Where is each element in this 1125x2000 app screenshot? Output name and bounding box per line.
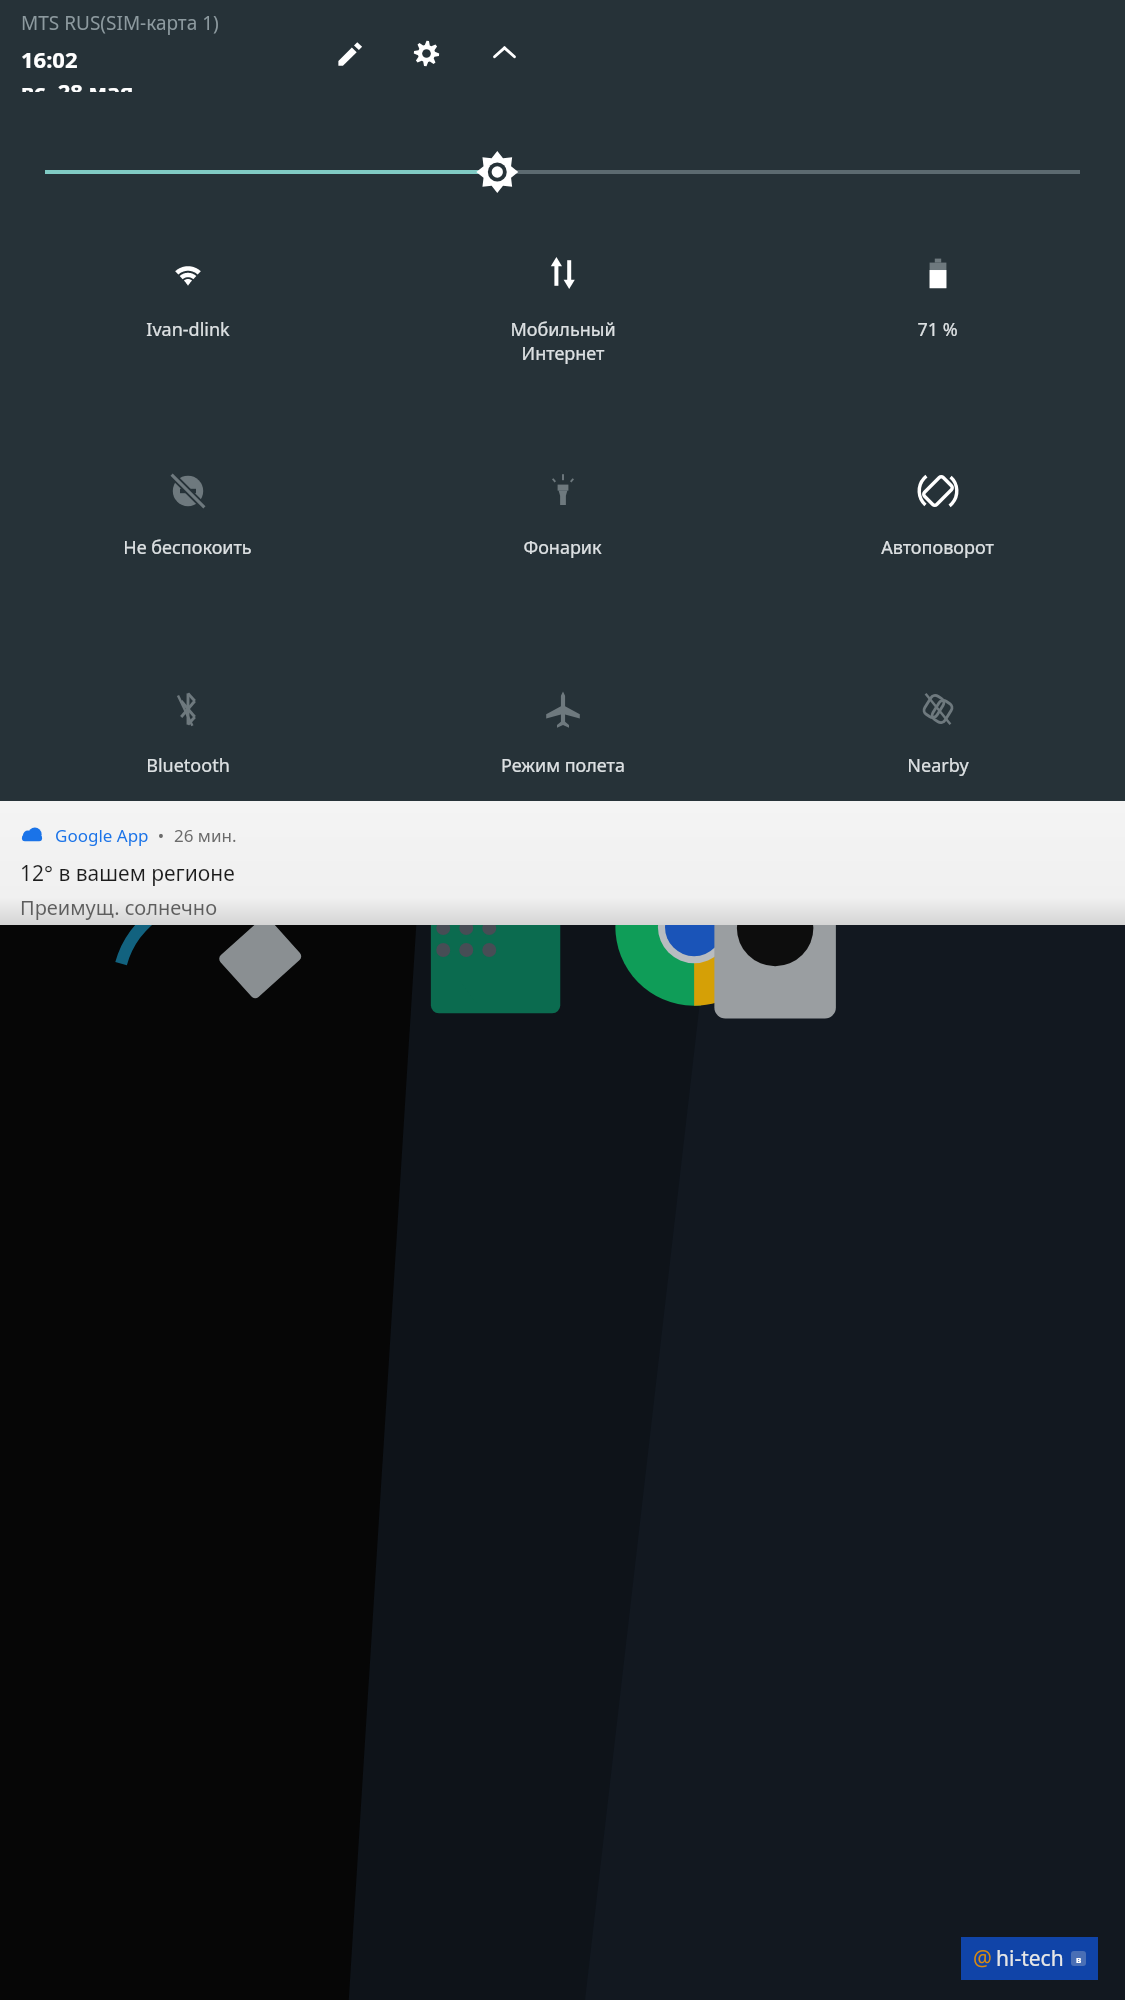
staticText: Nearby [907, 753, 969, 778]
button[interactable]: Ivan-dlink [0, 243, 375, 419]
button[interactable]: Collapse [484, 33, 524, 73]
button[interactable]: 71 % [750, 243, 1125, 419]
button[interactable]: Мобильный Интернет [375, 243, 750, 419]
staticText: MTS RUS(SIM-карта 1) [21, 10, 219, 36]
button[interactable]: Автоповорот [750, 461, 1125, 637]
staticText: 71 % [917, 317, 958, 342]
staticText: в [1076, 1953, 1082, 1965]
button[interactable]: Settings [406, 33, 446, 73]
staticText: вс, 28 мая [21, 76, 134, 92]
staticText: Мобильный Интернет [510, 317, 616, 365]
staticText: Не беспокоить [123, 535, 252, 560]
staticText: 12° в вашем регионе [20, 859, 235, 888]
staticText: Фонарик [523, 535, 602, 560]
button[interactable]: Nearby [750, 679, 1125, 801]
button[interactable]: Edit [330, 33, 370, 73]
staticText: Преимущ. солнечно [20, 894, 218, 921]
staticText: Автоповорот [881, 535, 994, 560]
staticText: • [149, 824, 174, 847]
button[interactable]: Не беспокоить [0, 461, 375, 637]
button[interactable]: @ [973, 1944, 1086, 1973]
staticText: Ivan-dlink [146, 317, 230, 342]
button[interactable]: Google App [0, 801, 1125, 925]
staticText: Режим полета [501, 753, 625, 778]
staticText: Bluetooth [146, 753, 230, 778]
button[interactable]: Фонарик [375, 461, 750, 637]
staticText: hi-tech [996, 1944, 1064, 1973]
staticText: 16:02 [21, 44, 78, 74]
button[interactable]: Режим полета [375, 679, 750, 801]
button[interactable]: Bluetooth [0, 679, 375, 801]
button[interactable]: Brightness [0, 145, 1125, 199]
staticText: Google App [55, 824, 149, 847]
staticText: 26 мин. [174, 824, 237, 847]
staticText: @ [973, 1944, 992, 1973]
